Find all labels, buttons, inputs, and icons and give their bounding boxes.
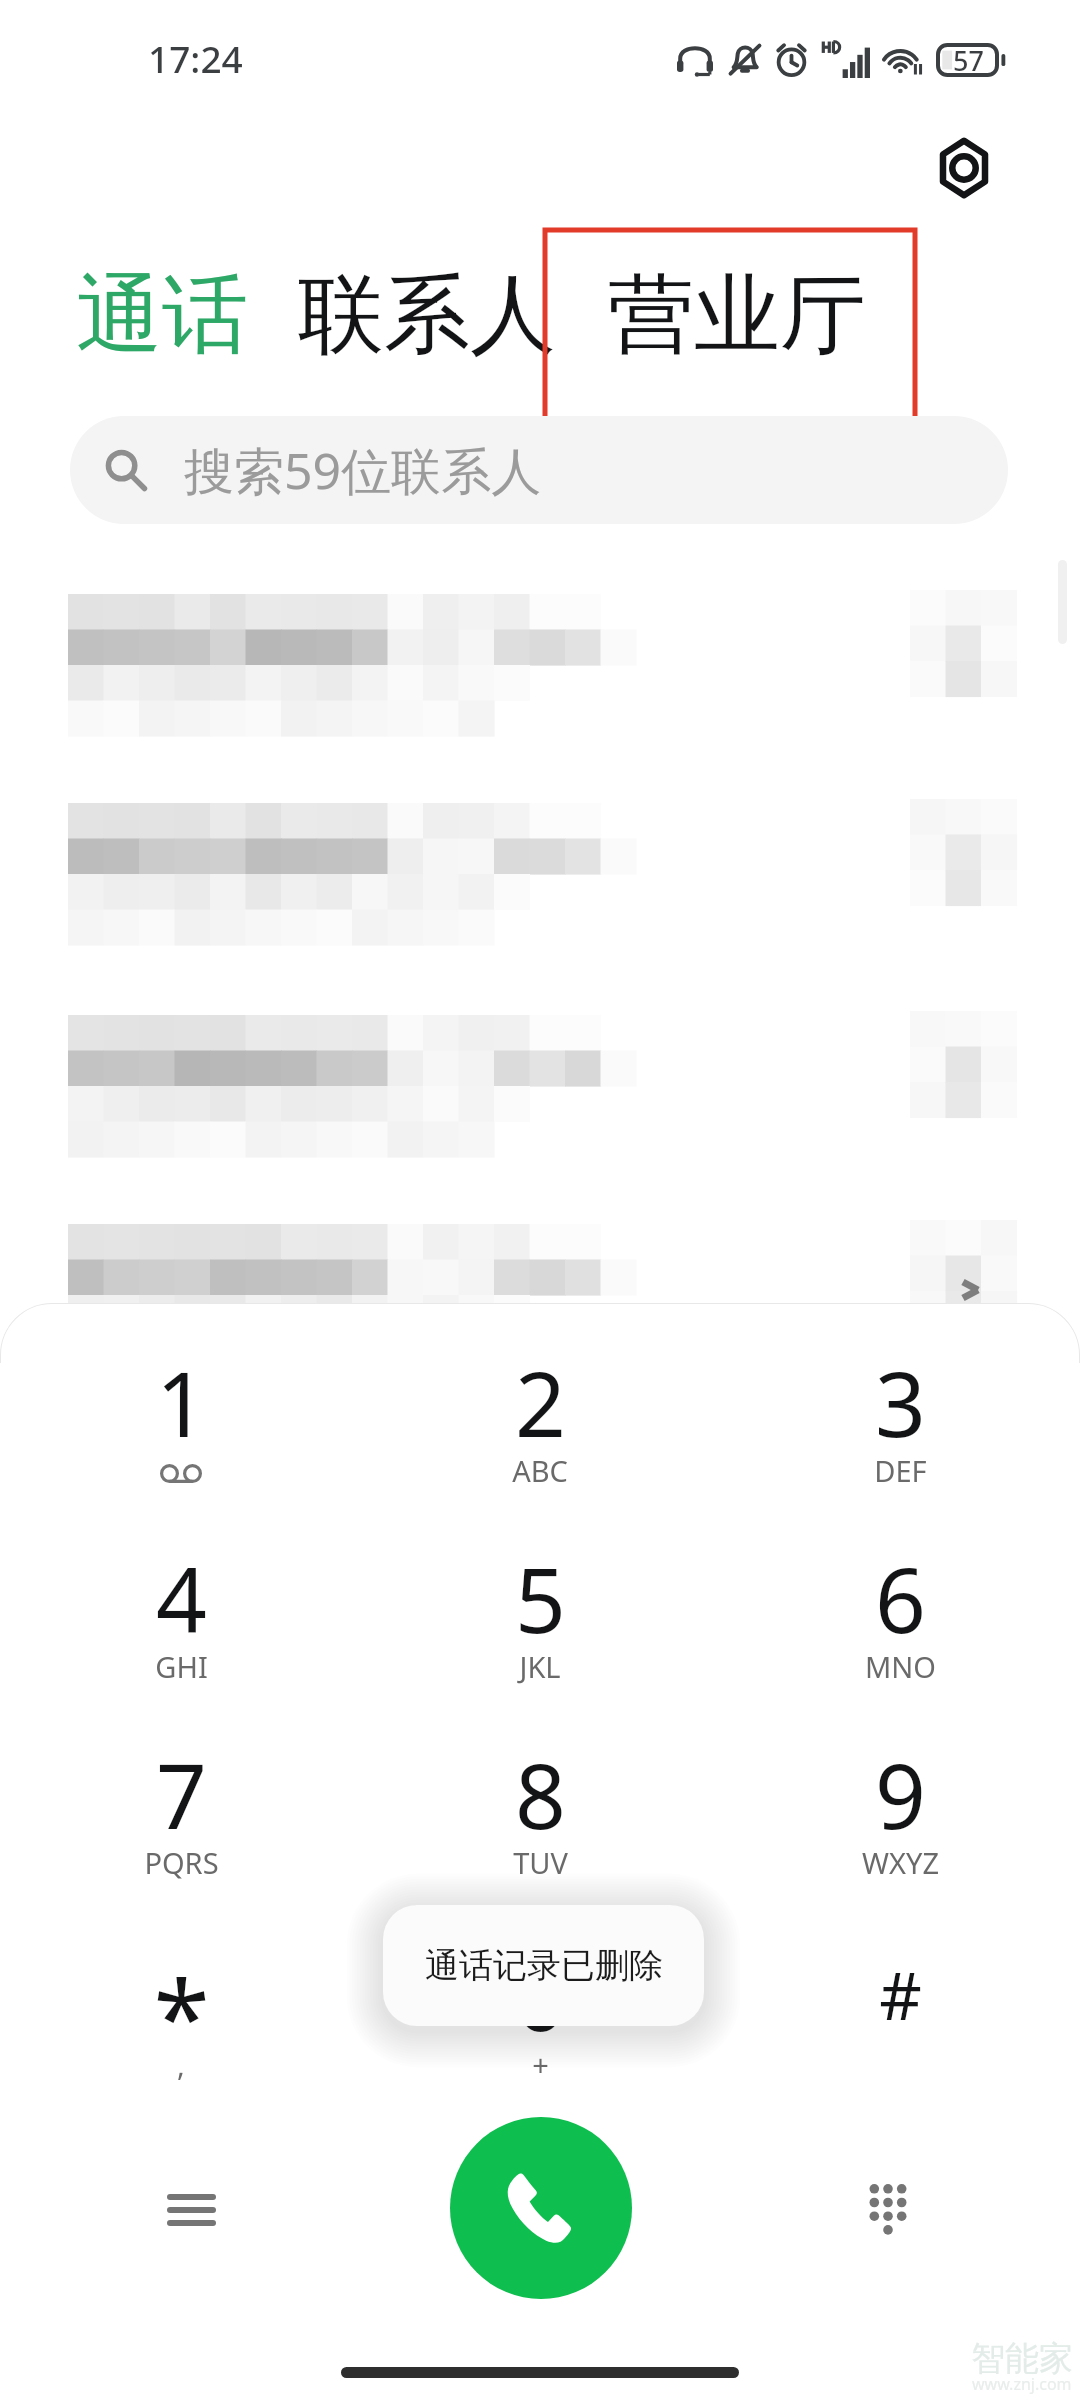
button[interactable]: Dialpad [833, 2155, 943, 2265]
staticText: 1 [156, 1342, 207, 1463]
staticText: JKL [519, 1647, 561, 1686]
staticText: www.znj.com [972, 2373, 1072, 2395]
staticText: ABC [512, 1451, 568, 1490]
staticText: 7 [156, 1734, 207, 1855]
staticText: GHI [155, 1647, 208, 1686]
staticText: 57 [953, 42, 984, 78]
staticText: 智能家 [971, 2337, 1073, 2380]
button[interactable] [740, 1519, 1060, 1709]
staticText: 2 [515, 1342, 566, 1463]
staticText: 营业厅 [608, 261, 866, 369]
button[interactable] [380, 1917, 700, 2107]
staticText: * [153, 1946, 210, 2076]
staticText: 联系人 [298, 261, 556, 369]
staticText: 通话记录已删除 [425, 1944, 663, 1987]
staticText: # [879, 1949, 922, 2039]
staticText: PQRS [144, 1843, 219, 1882]
staticText: 6 [875, 1538, 926, 1659]
staticText: 17:24 [148, 33, 243, 83]
button[interactable]: Call [450, 2117, 632, 2299]
button[interactable] [21, 1519, 341, 1709]
staticText: 搜索59位联系人 [184, 436, 542, 504]
button[interactable]: 通话 [51, 236, 273, 394]
button[interactable] [380, 1715, 700, 1905]
button[interactable] [740, 1715, 1060, 1905]
button[interactable]: Call log [136, 2155, 246, 2265]
staticText: 通话 [76, 261, 248, 369]
button[interactable] [21, 1323, 341, 1513]
button[interactable] [21, 1715, 341, 1905]
button[interactable]: 营业厅 [582, 236, 891, 394]
button[interactable] [21, 1917, 341, 2107]
button[interactable]: 搜索59位联系人 [70, 416, 1008, 524]
button[interactable] [380, 1519, 700, 1709]
staticText: 0 [515, 1936, 566, 2057]
staticText: 5 [515, 1538, 566, 1659]
staticText: 3 [875, 1342, 926, 1463]
staticText: MNO [865, 1647, 936, 1686]
button[interactable] [740, 1323, 1060, 1513]
staticText: TUV [513, 1843, 568, 1882]
staticText: 8 [515, 1734, 566, 1855]
staticText: , [177, 2045, 185, 2084]
staticText: + [532, 2045, 549, 2084]
button[interactable]: Settings [924, 128, 1004, 208]
button[interactable]: 联系人 [273, 236, 582, 394]
staticText: 9 [875, 1734, 926, 1855]
staticText: 4 [156, 1538, 207, 1659]
staticText: WXYZ [862, 1843, 939, 1882]
button[interactable] [380, 1323, 700, 1513]
staticText: DEF [874, 1451, 927, 1490]
button[interactable] [740, 1917, 1060, 2107]
